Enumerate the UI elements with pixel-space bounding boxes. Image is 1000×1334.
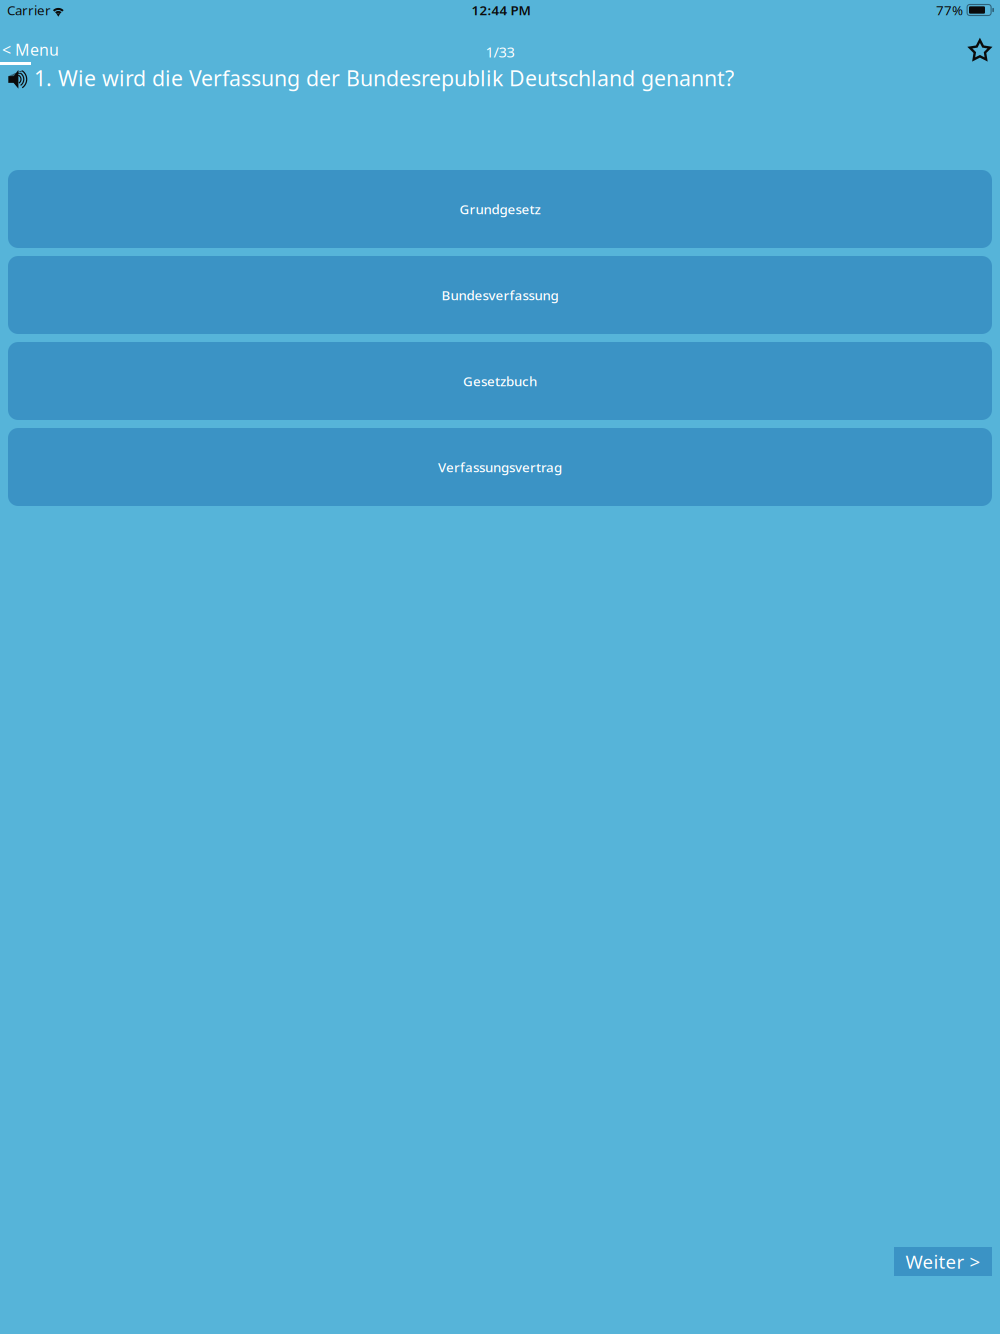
button[interactable]: Bundesverfassung [8,256,992,334]
button[interactable]: Verfassungsvertrag [8,428,992,506]
staticText: 1. Wie wird die Verfassung der Bundesrep… [34,64,734,92]
staticText: Verfassungsvertrag [438,458,562,476]
staticText: Carrier [7,1,51,19]
button[interactable]: Favourite this question [968,20,992,63]
staticText: < Menu [2,39,59,60]
button[interactable]: Weiter > [894,1247,992,1276]
staticText: Weiter > [905,1249,980,1274]
button[interactable]: Grundgesetz [8,170,992,248]
staticText: Gesetzbuch [463,372,537,390]
staticText: 12:44 PM [471,1,530,19]
button[interactable]: Read question aloud [8,66,28,89]
staticText: 1/33 [485,42,514,61]
staticText: Bundesverfassung [441,286,558,304]
button[interactable]: < Menu [2,20,59,60]
button[interactable]: Gesetzbuch [8,342,992,420]
staticText: 77% [936,1,963,19]
staticText: Grundgesetz [459,200,540,218]
